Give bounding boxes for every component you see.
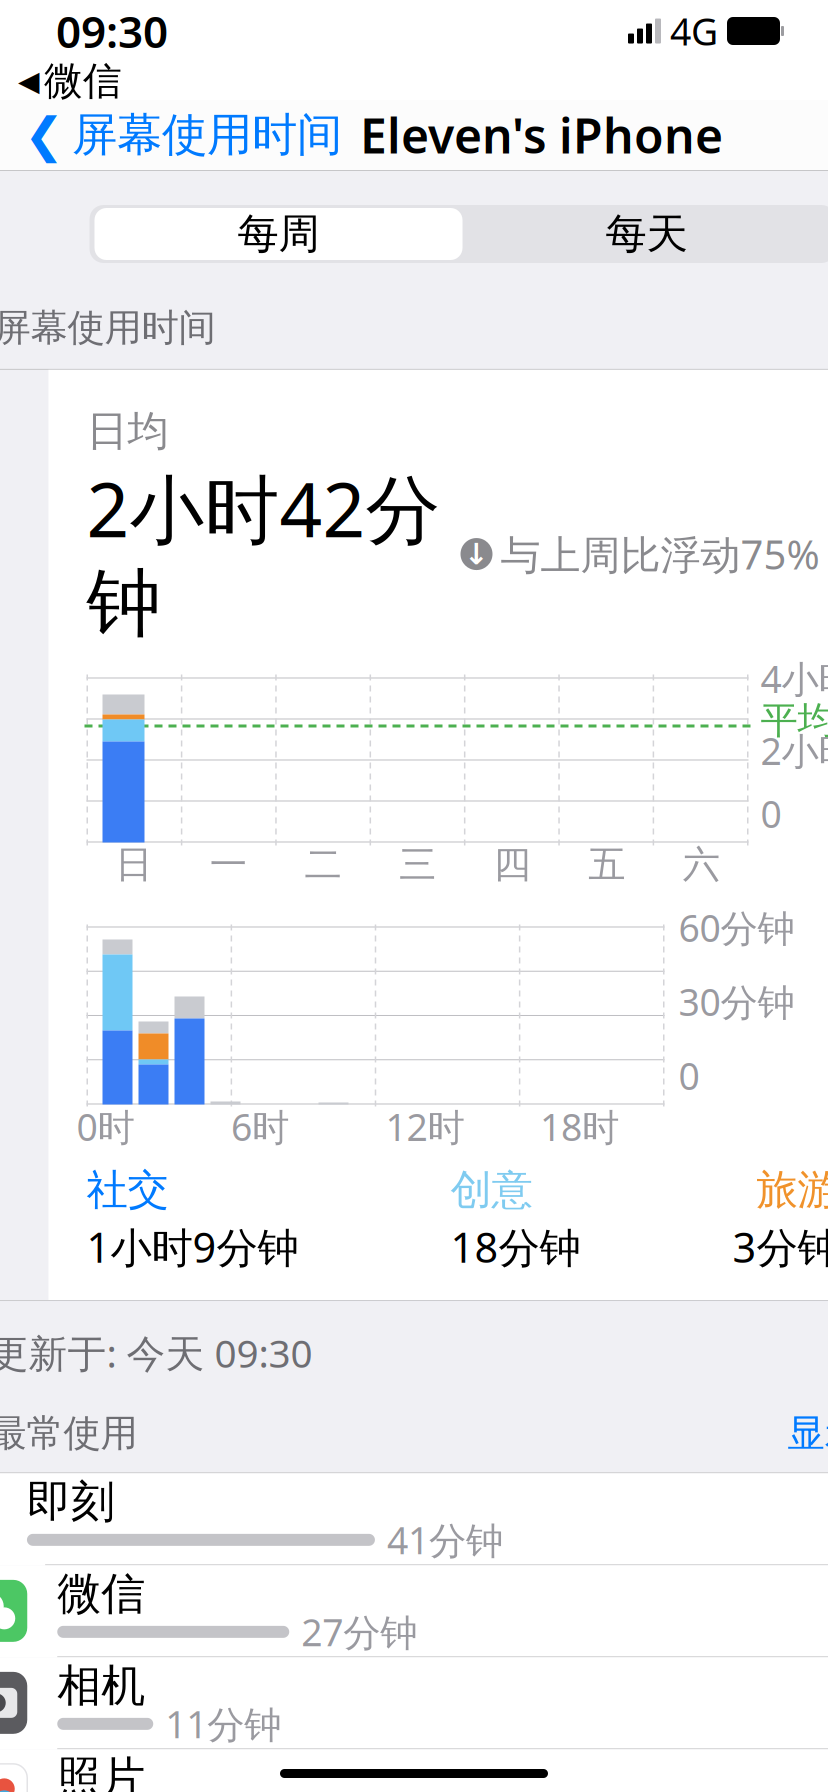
staticText: 四 [494,842,531,887]
staticText: 每天 [605,209,687,259]
staticText: 社交 [86,1164,168,1215]
button[interactable]: 亅 [0,1473,828,1565]
staticText: 1小时9分钟 [86,1219,298,1274]
staticText: 4小时 [760,654,828,703]
staticText: 0 [760,789,781,838]
button[interactable]: 相机 [0,1657,828,1749]
button[interactable]: 照片 [0,1749,828,1792]
staticText: 微信 [44,57,122,105]
staticText: 屏幕使用时间 [0,305,215,351]
staticText: 旅游 [756,1164,828,1215]
staticText: 显示类别 [787,1410,828,1456]
staticText: 30分钟 [678,977,794,1026]
button[interactable]: 显示类别 [787,1410,828,1456]
staticText: Eleven's iPhone [360,103,723,167]
staticText: 五 [588,842,625,887]
staticText: 09:30 [56,2,168,60]
staticText: 微信 [57,1567,145,1621]
staticText: 平均 [760,698,828,743]
staticText: ❮ [24,108,64,162]
staticText: ↓ [464,537,489,571]
staticText: 更新于: 今天 09:30 [0,1327,312,1378]
staticText: 4G [670,6,718,56]
staticText: 2小时 [760,726,828,775]
staticText: 屏幕使用时间 [72,107,342,163]
button[interactable]: 微信 [0,1565,828,1657]
staticText: 一 [210,842,247,887]
staticText: 18分钟 [450,1219,580,1274]
staticText: 41分钟 [387,1515,503,1565]
staticText: 3分钟 [732,1219,828,1274]
button[interactable]: 每周 [94,208,462,260]
staticText: 0时 [76,1102,134,1151]
staticText: 6分钟 [121,1791,216,1792]
staticText: 2小时42分钟 [86,459,440,649]
staticText: 创意 [450,1164,532,1215]
staticText: 最常使用 [0,1410,137,1456]
staticText: 每周 [237,209,319,259]
button[interactable]: ❮ [0,99,342,171]
staticText: 11分钟 [165,1699,281,1749]
staticText: 三 [399,842,436,887]
staticText: 二 [304,842,341,887]
staticText: 即刻 [27,1475,115,1529]
button[interactable]: 每天 [462,208,828,260]
staticText: ◀ [18,65,40,97]
staticText: 0 [678,1051,699,1100]
staticText: 18时 [540,1102,619,1151]
staticText: 12时 [385,1102,464,1151]
staticText: 与上周比浮动75% [500,527,819,581]
staticText: 60分钟 [678,903,794,952]
staticText: 日均 [86,406,168,457]
staticText: 相机 [57,1659,145,1713]
staticText: 六 [683,842,720,887]
staticText: 27分钟 [301,1607,417,1657]
staticText: 照片 [57,1751,145,1792]
staticText: 日 [115,842,152,887]
staticText: 6时 [231,1102,289,1151]
button[interactable]: Back to 微信 [18,57,122,105]
